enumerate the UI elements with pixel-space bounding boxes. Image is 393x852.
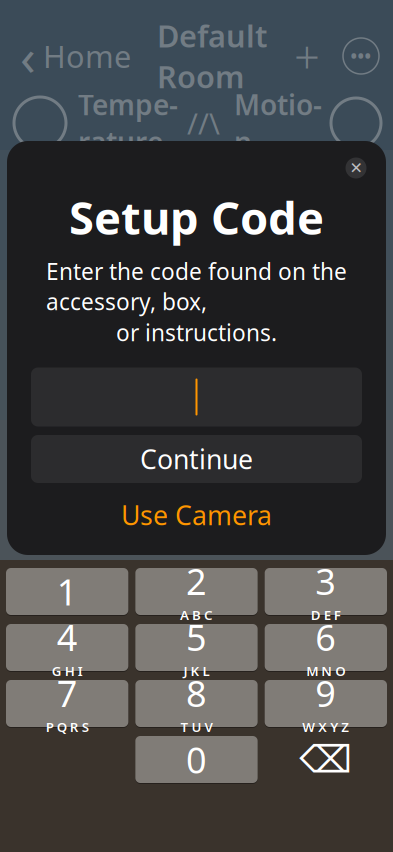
staticText: 0 xyxy=(186,736,207,783)
button[interactable]: ‹ xyxy=(14,18,137,94)
button[interactable]: Use Camera xyxy=(31,493,362,537)
staticText: ⌫ xyxy=(299,738,352,781)
button[interactable]: Continue xyxy=(31,435,362,483)
staticText: 4 xyxy=(57,613,78,661)
staticText: W X Y Z xyxy=(302,718,349,736)
staticText: 6 xyxy=(315,613,336,661)
button[interactable]: Close xyxy=(339,151,373,185)
button[interactable]: Add Accessory xyxy=(287,36,327,76)
button[interactable]: 1 xyxy=(6,567,128,616)
staticText: 3 xyxy=(315,557,336,605)
staticText: 8 xyxy=(186,669,207,717)
button[interactable]: 7 xyxy=(6,679,128,728)
staticText: Motion xyxy=(234,86,322,160)
staticText: P Q R S xyxy=(46,718,89,736)
staticText: Enter the code found on the accessory, b… xyxy=(46,256,347,316)
button[interactable]: Delete xyxy=(265,735,387,784)
staticText: M N O xyxy=(306,662,345,680)
staticText: J K L xyxy=(183,662,209,680)
staticText: 5 xyxy=(186,613,207,661)
button[interactable]: 0 xyxy=(135,735,258,784)
button[interactable]: 8 xyxy=(135,679,258,728)
staticText: G H I xyxy=(52,662,83,680)
staticText: Continue xyxy=(140,441,253,477)
staticText: or instructions. xyxy=(116,317,277,347)
staticText: ••• xyxy=(350,44,371,67)
staticText: A B C xyxy=(180,606,213,624)
button[interactable]: 5 xyxy=(135,623,258,672)
button[interactable]: 2 xyxy=(135,567,258,616)
staticText: 1 xyxy=(57,568,78,615)
staticText: D E F xyxy=(311,606,341,624)
button[interactable]: 4 xyxy=(6,623,128,672)
staticText: 7 xyxy=(57,669,78,717)
staticText: 2 xyxy=(186,557,207,605)
staticText: Temperature xyxy=(78,86,178,160)
staticText: Home xyxy=(43,36,131,76)
staticText: ✕ xyxy=(349,159,362,177)
staticText: ‹ xyxy=(20,22,36,90)
staticText: 9 xyxy=(315,669,336,717)
staticText: //\ xyxy=(187,103,220,142)
button[interactable]: More Options xyxy=(343,38,379,74)
staticText: + xyxy=(294,26,320,86)
staticText: Default Room xyxy=(157,15,267,97)
staticText: T U V xyxy=(180,718,212,736)
staticText: Setup Code xyxy=(69,187,324,247)
staticText: Use Camera xyxy=(121,497,272,533)
button[interactable]: 9 xyxy=(265,679,387,728)
button[interactable]: 6 xyxy=(265,623,387,672)
button[interactable]: 3 xyxy=(265,567,387,616)
